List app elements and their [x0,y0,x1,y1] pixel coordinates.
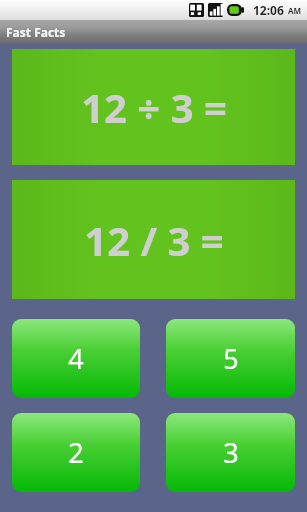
staticText: Fast Facts [6,24,66,40]
staticText: 4 [68,340,84,377]
staticText: 2 [68,434,84,471]
staticText: 12 ÷ 3 = [81,80,227,134]
staticText: 5 [223,340,239,377]
button[interactable]: 5 [166,319,295,398]
button[interactable]: 12 ÷ 3 = [12,49,295,165]
staticText: 3 [223,434,239,471]
staticText: 12 / 3 = [84,213,224,267]
button[interactable]: 12 / 3 = [12,180,295,299]
button[interactable]: 4 [12,319,140,398]
button[interactable]: 3 [166,413,295,492]
button[interactable]: 2 [12,413,140,492]
staticText: AM [288,5,302,16]
staticText: 12:06 [253,2,284,18]
